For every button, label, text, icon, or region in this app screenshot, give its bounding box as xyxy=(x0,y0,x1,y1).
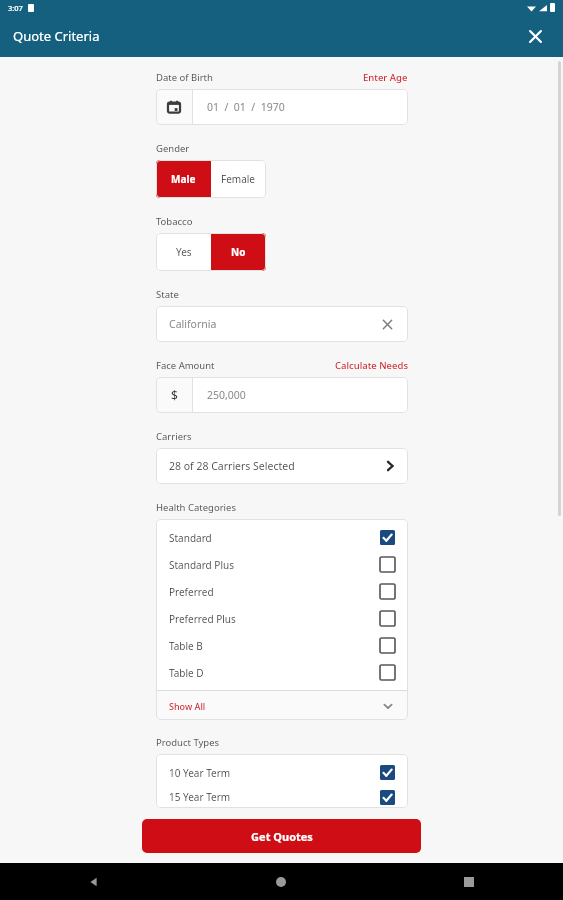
button[interactable]: Calculate Needs xyxy=(335,359,408,372)
button[interactable]: Close xyxy=(520,21,550,51)
staticText: 15 Year Term xyxy=(169,790,231,804)
staticText: Preferred Plus xyxy=(169,612,236,626)
staticText: 3:07 xyxy=(8,3,23,13)
staticText: Preferred xyxy=(169,585,214,599)
staticText: Gender xyxy=(156,142,190,155)
button[interactable]: Show All xyxy=(156,691,408,720)
button[interactable]: Male xyxy=(156,160,211,198)
staticText: 28 of 28 Carriers Selected xyxy=(169,459,295,473)
staticText: Quote Criteria xyxy=(13,27,100,45)
staticText: Carriers xyxy=(156,430,192,443)
button[interactable]: Enter Age xyxy=(363,71,408,84)
button[interactable]: 01 / 01 / 1970 xyxy=(156,89,408,125)
staticText: Table B xyxy=(169,639,203,653)
button[interactable]: Get Quotes xyxy=(142,819,421,853)
button[interactable]: Standard Plus xyxy=(156,551,408,578)
staticText: Male xyxy=(171,172,196,186)
button[interactable]: Back xyxy=(0,863,187,900)
staticText: Table D xyxy=(169,666,204,680)
staticText: Health Categories xyxy=(156,501,236,514)
staticText: $ xyxy=(171,387,178,403)
staticText: California xyxy=(169,317,217,331)
staticText: No xyxy=(231,245,246,259)
button[interactable]: Female xyxy=(211,160,266,198)
button[interactable]: Preferred xyxy=(156,578,408,605)
button[interactable]: Yes xyxy=(156,233,211,271)
staticText: Show All xyxy=(169,700,206,712)
staticText: Standard Plus xyxy=(169,558,234,572)
staticText: Female xyxy=(221,172,256,186)
button[interactable]: 10 Year Term xyxy=(156,759,408,786)
staticText: Standard xyxy=(169,531,212,545)
staticText: Tobacco xyxy=(156,215,193,228)
button[interactable]: $ xyxy=(156,377,408,413)
staticText: 10 Year Term xyxy=(169,766,231,780)
button[interactable]: Table B xyxy=(156,632,408,659)
button[interactable]: 15 Year Term xyxy=(156,786,408,808)
staticText: Date of Birth xyxy=(156,71,213,84)
button[interactable]: Table D xyxy=(156,659,408,686)
button[interactable]: Home xyxy=(187,863,375,900)
button[interactable]: Standard xyxy=(156,524,408,551)
staticText: 250,000 xyxy=(207,388,246,402)
staticText: 01 / 01 / 1970 xyxy=(207,100,285,114)
button[interactable]: 28 of 28 Carriers Selected xyxy=(156,448,408,484)
button[interactable]: No xyxy=(211,233,266,271)
button[interactable]: California xyxy=(156,306,408,342)
button[interactable]: Recent apps xyxy=(375,863,563,900)
staticText: Yes xyxy=(176,245,192,259)
staticText: Product Types xyxy=(156,736,220,749)
button[interactable]: Preferred Plus xyxy=(156,605,408,632)
other: Clear state xyxy=(379,316,395,332)
staticText: State xyxy=(156,288,179,301)
staticText: Face Amount xyxy=(156,359,215,372)
staticText: Get Quotes xyxy=(251,829,313,844)
